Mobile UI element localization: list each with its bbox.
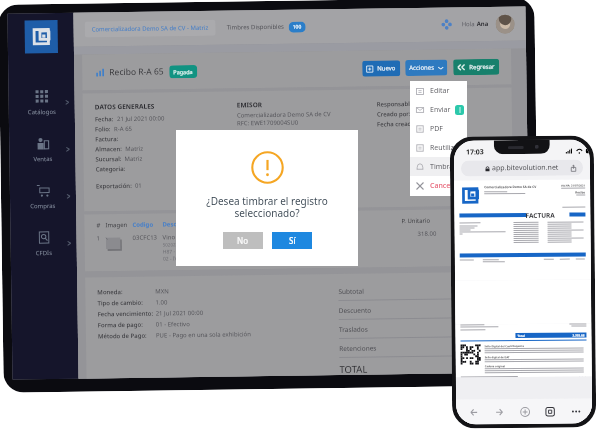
staticText: Catálogos bbox=[28, 108, 57, 116]
button[interactable]: Atrás bbox=[465, 403, 482, 420]
staticText: FACTURA bbox=[525, 211, 555, 219]
staticText: P. Unitario bbox=[401, 216, 461, 225]
staticText: Sello Digital del Contribuyente bbox=[484, 344, 524, 348]
staticText: Forma de pago: bbox=[98, 321, 156, 329]
staticText: Total bbox=[517, 334, 525, 338]
staticText: DATOS GENERALES bbox=[95, 102, 155, 111]
button[interactable]: Ventas bbox=[9, 126, 76, 174]
staticText: No bbox=[237, 235, 249, 246]
staticText: Fecha: bbox=[95, 115, 114, 123]
staticText: Factura: bbox=[95, 135, 119, 143]
staticText: H87 - Pieza bbox=[163, 248, 189, 255]
staticText: 21 Jul 2021 00:00 bbox=[117, 114, 165, 123]
button[interactable]: Cancelar bbox=[410, 176, 467, 195]
staticText: Creado por: bbox=[377, 110, 411, 118]
button[interactable]: Regresar bbox=[453, 59, 499, 75]
button[interactable]: Enviar bbox=[410, 100, 467, 119]
button[interactable]: Comercializadora Demo SA de CV - Matriz bbox=[85, 20, 216, 37]
button[interactable]: Sí bbox=[272, 232, 312, 249]
staticText: Cadena original bbox=[485, 364, 506, 368]
button[interactable]: Acciones bbox=[405, 59, 447, 76]
button[interactable]: No bbox=[223, 232, 263, 249]
staticText: Método de Pago: bbox=[98, 332, 156, 340]
staticText: Timbrar bbox=[430, 162, 457, 172]
staticText: Matriz bbox=[125, 145, 143, 153]
button[interactable]: Editar bbox=[410, 81, 467, 100]
staticText: Reutilizar bbox=[430, 143, 461, 153]
staticText: 17:03 bbox=[466, 147, 484, 157]
button[interactable]: app.bitevolution.net bbox=[461, 159, 583, 177]
staticText: Retenciones bbox=[339, 343, 377, 353]
button[interactable]: PDF bbox=[410, 119, 467, 138]
staticText: CFDIs bbox=[36, 249, 53, 257]
staticText: Comercializadora Demo SA de CV bbox=[484, 185, 537, 189]
staticText: Matriz bbox=[124, 155, 142, 163]
staticText: Traslados bbox=[339, 325, 368, 334]
staticText: 21 Jul 2021 00:00 bbox=[156, 309, 204, 318]
staticText: Recibo bbox=[575, 190, 585, 195]
staticText: Sucursal: bbox=[95, 155, 121, 163]
staticText: MXN bbox=[481, 361, 503, 373]
button[interactable]: Adelante bbox=[490, 403, 507, 420]
staticText: 318.00 bbox=[417, 230, 437, 238]
staticText: Almacen: bbox=[95, 145, 122, 153]
staticText: 03CFC13 bbox=[132, 233, 163, 242]
staticText: 02 - IVA tasa 16% bbox=[163, 255, 203, 262]
staticText: 1.00 bbox=[155, 298, 167, 307]
staticText: Categoria: bbox=[96, 165, 126, 173]
staticText: Vino Tinto Malbec bbox=[162, 233, 214, 241]
staticText: 01 - Efectivo bbox=[156, 320, 190, 329]
button[interactable]: Pestañas bbox=[541, 403, 558, 420]
staticText: Cancelar bbox=[430, 181, 460, 191]
staticText: Editar bbox=[430, 86, 450, 96]
staticText: R-A 65 bbox=[114, 125, 132, 133]
staticText: 01 bbox=[135, 182, 142, 190]
staticText: Regresar bbox=[469, 63, 495, 71]
staticText: ¿Desea timbrar el registro seleccionado? bbox=[206, 194, 328, 220]
button[interactable]: Nuevo bbox=[362, 60, 400, 77]
staticText: Fecha vencimiento: bbox=[98, 310, 156, 318]
staticText: Tipo de cambio: bbox=[97, 299, 155, 307]
staticText: Hola bbox=[462, 20, 477, 28]
staticText: Ana bbox=[477, 20, 489, 28]
button[interactable]: Nueva pestaña bbox=[516, 403, 533, 420]
staticText: Pagada bbox=[173, 68, 193, 75]
button[interactable]: Perfil bbox=[495, 15, 515, 34]
staticText: Responsable: bbox=[377, 100, 416, 108]
staticText: # bbox=[96, 221, 105, 229]
staticText: Sello digital del SAT bbox=[485, 355, 510, 359]
staticText: 1 bbox=[96, 234, 106, 242]
staticText: Ventas bbox=[33, 155, 52, 163]
staticText: app.bitevolution.net bbox=[492, 163, 559, 173]
button[interactable]: Reutilizar bbox=[410, 138, 467, 157]
staticText: Descuento bbox=[339, 306, 372, 315]
staticText: RFC: EWE1709004SU0 bbox=[237, 119, 299, 127]
button[interactable]: Catálogos bbox=[8, 79, 75, 127]
staticText: Imagen bbox=[105, 221, 132, 229]
staticText: Recibo R-A 65 bbox=[109, 65, 164, 78]
staticText: 2,926.00 bbox=[468, 229, 493, 237]
staticText: 3,393.68 bbox=[572, 333, 584, 338]
staticText: Acciones bbox=[409, 64, 434, 72]
staticText: PDF bbox=[430, 124, 443, 134]
staticText: Exportación: bbox=[96, 182, 132, 190]
button[interactable]: Apps bbox=[441, 18, 453, 31]
button[interactable]: Compras bbox=[10, 173, 76, 221]
staticText: FECHA: 21/07/2021 bbox=[561, 183, 585, 188]
button[interactable]: Timbrar bbox=[410, 157, 467, 176]
staticText: Subtotal bbox=[338, 287, 364, 296]
staticText: Traslados bbox=[461, 216, 501, 224]
button[interactable]: Más bbox=[567, 402, 584, 420]
button[interactable]: CFDIs bbox=[10, 220, 77, 268]
staticText: Compras bbox=[30, 202, 56, 210]
staticText: Folio: bbox=[95, 125, 111, 133]
staticText: Comercializadora Demo SA de CV - Matriz bbox=[92, 24, 209, 33]
staticText: Enviar bbox=[430, 105, 451, 115]
staticText: 100 bbox=[293, 23, 302, 31]
staticText: Descripción bbox=[162, 217, 401, 228]
staticText: EMISOR bbox=[237, 100, 263, 109]
staticText: PUE - Pago en una sola exhibición bbox=[156, 330, 251, 340]
staticText: Nuevo bbox=[377, 64, 396, 72]
staticText: 50202306 - Vino tinto bbox=[163, 241, 208, 247]
